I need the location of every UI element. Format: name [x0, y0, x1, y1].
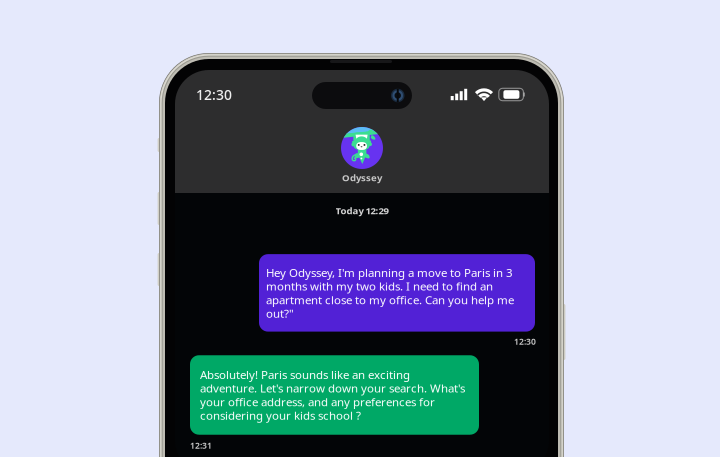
staticText: 12:30: [196, 85, 232, 104]
staticText: 12:31: [190, 440, 212, 451]
staticText: 12:30: [514, 336, 536, 347]
button[interactable]: Odyssey: [341, 127, 383, 184]
staticText: Odyssey: [342, 171, 382, 184]
staticText: Today 12:29: [335, 204, 388, 217]
staticText: Hey Odyssey, I'm planning a move to Pari…: [266, 265, 514, 321]
staticText: Absolutely! Paris sounds like an excitin…: [200, 367, 465, 423]
